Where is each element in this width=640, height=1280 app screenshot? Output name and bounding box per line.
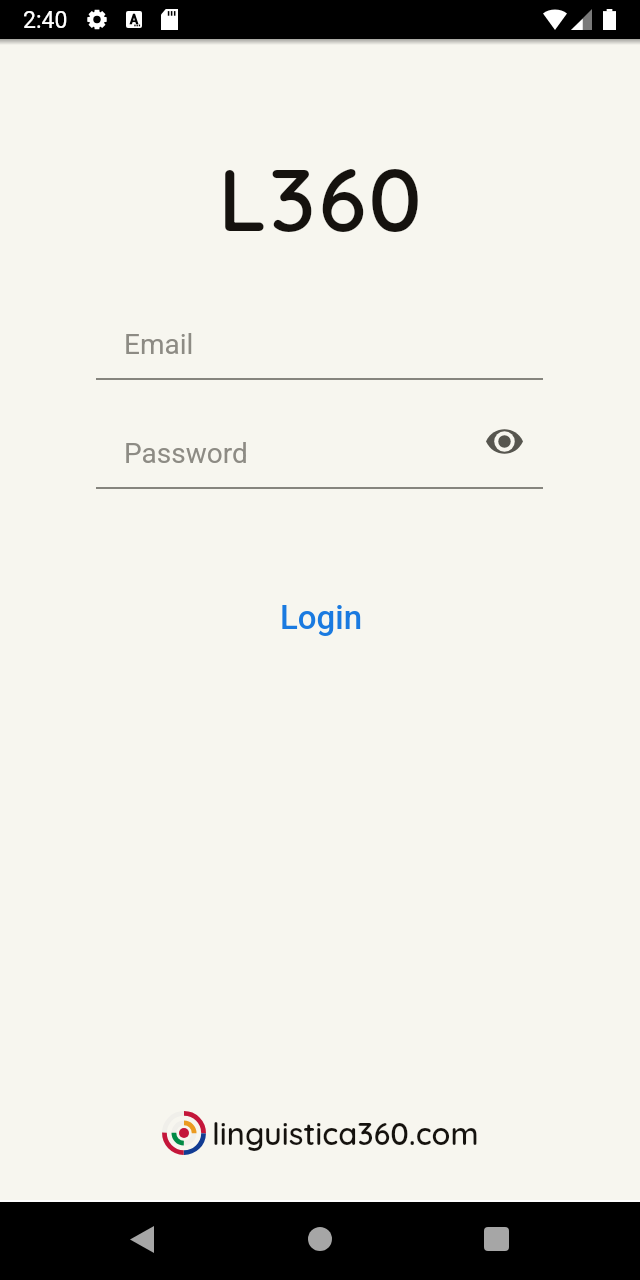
- staticText: linguistica360.com: [212, 1114, 479, 1152]
- button[interactable]: Password: [96, 429, 543, 489]
- staticText: Password: [124, 437, 248, 470]
- button[interactable]: Show password: [480, 417, 528, 465]
- staticText: 2:40: [23, 7, 68, 34]
- staticText: Email: [124, 328, 194, 361]
- button[interactable]: Login: [1, 593, 640, 641]
- button[interactable]: Back: [110, 1207, 174, 1271]
- button[interactable]: Home: [288, 1207, 352, 1271]
- button[interactable]: Email: [96, 320, 543, 380]
- staticText: L360: [218, 143, 425, 253]
- staticText: Login: [280, 598, 363, 637]
- button[interactable]: Recent apps: [464, 1207, 528, 1271]
